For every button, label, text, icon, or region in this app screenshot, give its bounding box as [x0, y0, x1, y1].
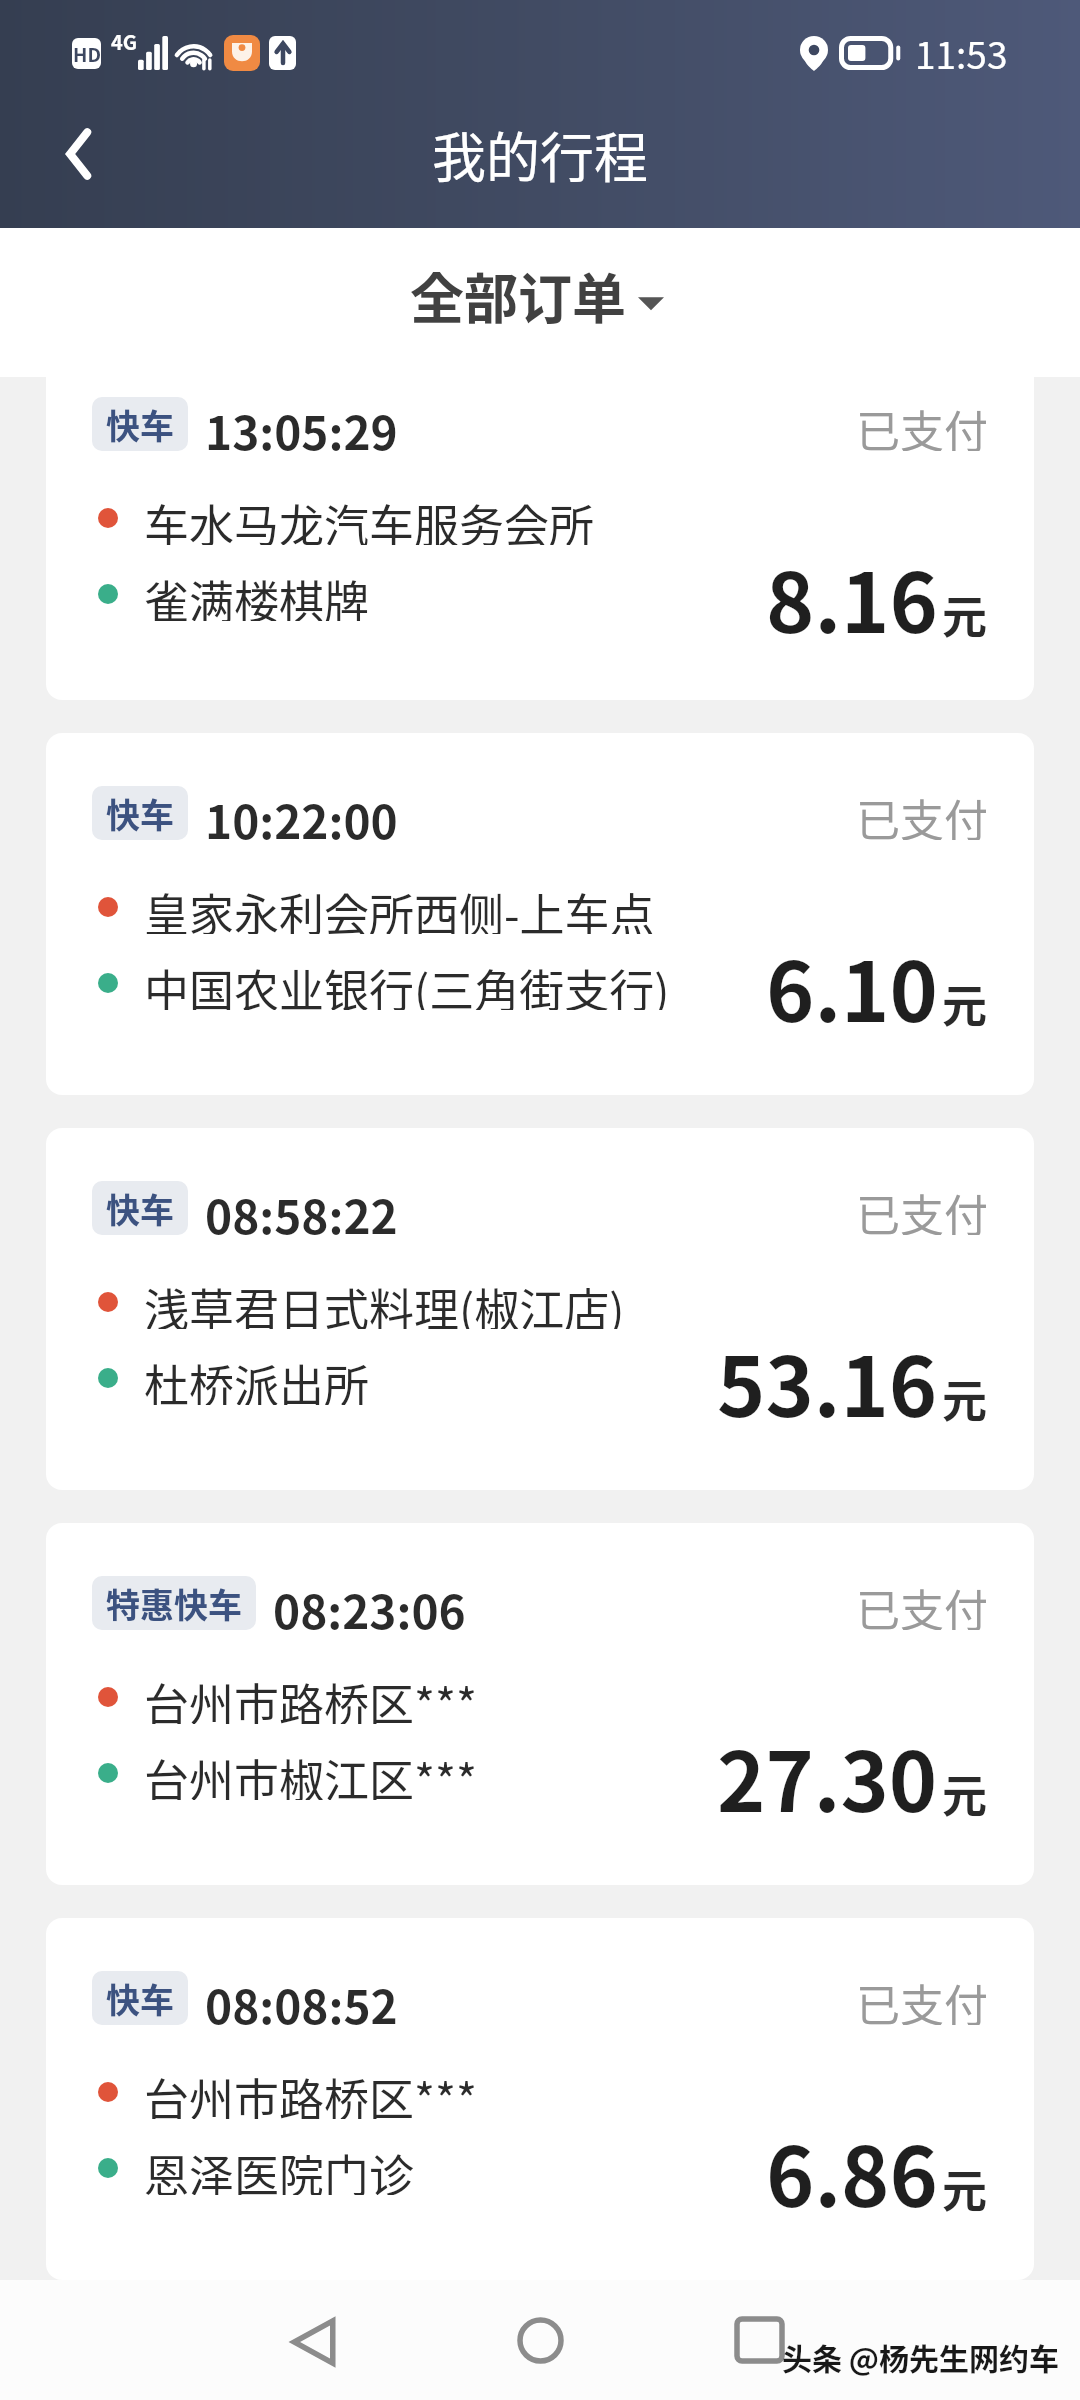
staticText: HD	[73, 40, 101, 68]
staticText: 6.86	[766, 2112, 938, 2231]
staticText: 08:23:06	[273, 1576, 466, 1630]
staticText: 11:53	[915, 26, 1008, 80]
staticText: 全部订单	[410, 256, 626, 334]
staticText: 皇家永利会所西侧-上车点	[144, 880, 655, 934]
staticText: 特惠快车	[106, 1579, 242, 1628]
staticText: 元	[942, 1761, 988, 1826]
staticText: 13:05:29	[205, 397, 398, 451]
staticText: 元	[942, 2156, 988, 2221]
staticText: 雀满楼棋牌	[144, 567, 370, 621]
staticText: 6.10	[766, 927, 938, 1046]
staticText: 27.30	[717, 1717, 938, 1836]
staticText: 已支付	[856, 1971, 988, 2025]
staticText: 元	[942, 971, 988, 1036]
staticText: 53.16	[717, 1322, 938, 1441]
staticText: 中国农业银行(三角街支行)	[144, 956, 670, 1010]
staticText: 车水马龙汽车服务会所	[144, 491, 595, 545]
staticText: 元	[942, 582, 988, 647]
staticText: 已支付	[856, 786, 988, 840]
staticText: 快车	[106, 400, 174, 449]
staticText: 10:22:00	[205, 786, 398, 840]
staticText: 8.16	[766, 538, 938, 657]
staticText: 4G	[111, 27, 138, 56]
staticText: 杜桥派出所	[144, 1351, 370, 1405]
staticText: 08:58:22	[205, 1181, 398, 1235]
staticText: 浅草君日式料理(椒江店)	[144, 1275, 625, 1329]
button[interactable]: 全部订单	[410, 256, 664, 334]
staticText: 已支付	[856, 397, 988, 451]
button[interactable]: Back	[0, 94, 150, 214]
staticText: 快车	[106, 1184, 174, 1233]
staticText: 头条 @杨先生网约车	[782, 2335, 1060, 2378]
button[interactable]: 特惠快车	[46, 1523, 1034, 1885]
staticText: 快车	[106, 789, 174, 838]
staticText: 恩泽医院门诊	[144, 2141, 415, 2195]
button[interactable]: Back	[258, 2280, 368, 2400]
staticText: 08:08:52	[205, 1971, 398, 2025]
staticText: 我的行程	[432, 115, 648, 193]
staticText: 已支付	[856, 1181, 988, 1235]
button[interactable]: 快车	[46, 1128, 1034, 1490]
staticText: 台州市路桥区***	[144, 1670, 478, 1724]
button[interactable]: 快车	[46, 377, 1034, 700]
staticText: 已支付	[856, 1576, 988, 1630]
button[interactable]: 快车	[46, 1918, 1034, 2280]
staticText: 快车	[106, 1974, 174, 2023]
button[interactable]: Home	[485, 2280, 595, 2400]
staticText: 台州市椒江区***	[144, 1746, 478, 1800]
button[interactable]: 快车	[46, 733, 1034, 1095]
staticText: 元	[942, 1366, 988, 1431]
staticText: 台州市路桥区***	[144, 2065, 478, 2119]
button[interactable]: Recents	[704, 2280, 814, 2400]
